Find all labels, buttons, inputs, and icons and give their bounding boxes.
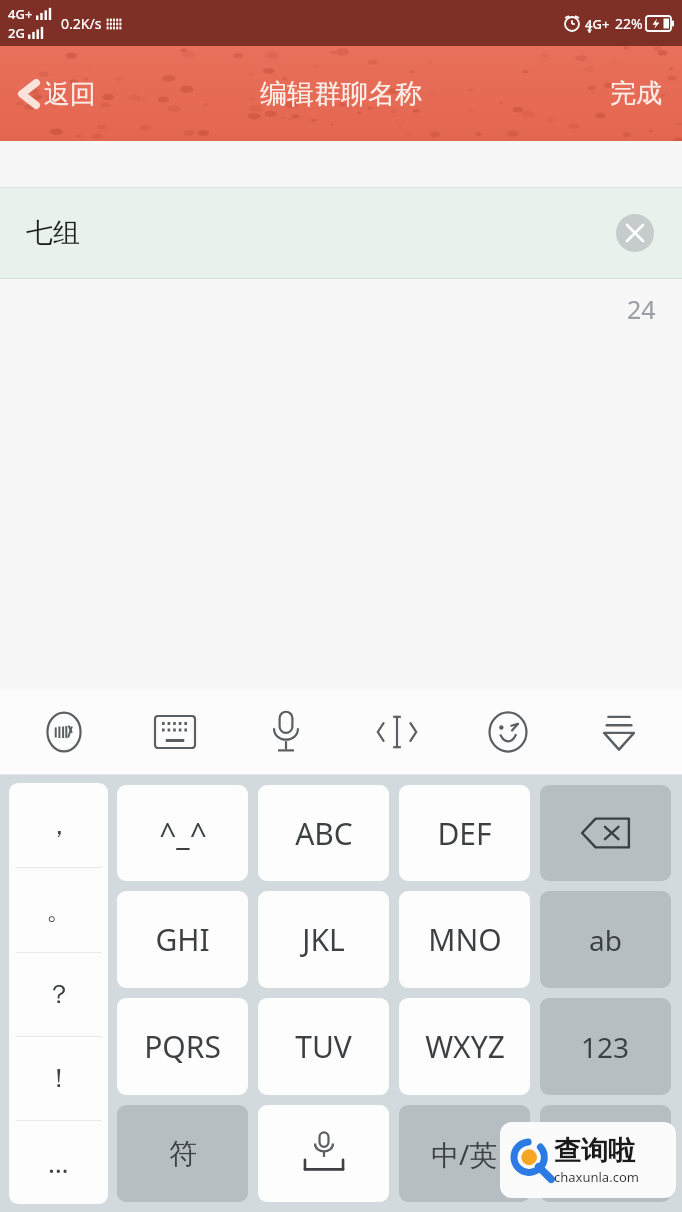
staticText: 编辑群聊名称 <box>260 77 422 111</box>
staticText: TUV <box>295 1026 352 1067</box>
staticText: 4G+ <box>8 5 33 23</box>
button[interactable]: Space <box>258 1105 389 1202</box>
staticText: 22% <box>615 14 643 33</box>
button[interactable]: 完成 <box>602 69 670 118</box>
button[interactable]: TUV <box>258 998 389 1095</box>
staticText: 0.2K/s <box>61 14 102 33</box>
button[interactable]: 返回 <box>10 69 102 119</box>
staticText: DEF <box>437 813 492 854</box>
staticText: ab <box>589 921 622 959</box>
staticText: ？ <box>46 978 72 1011</box>
button[interactable]: ^_^ <box>117 785 248 881</box>
staticText: ， <box>46 809 72 842</box>
staticText: chaxunla.com <box>554 1168 639 1186</box>
button[interactable]: Move cursor <box>341 689 452 775</box>
button[interactable]: WXYZ <box>399 998 530 1095</box>
button[interactable]: ， <box>9 783 108 867</box>
button[interactable]: JKL <box>258 891 389 988</box>
staticText: 中/英 <box>431 1135 498 1173</box>
staticText: GHI <box>155 919 210 960</box>
button[interactable]: 中/英 <box>399 1105 530 1202</box>
staticText: PQRS <box>144 1026 221 1067</box>
staticText: 4G+ <box>585 15 610 33</box>
button[interactable]: Clear text <box>616 214 654 252</box>
staticText: 。 <box>46 894 72 927</box>
staticText: 七组 <box>26 216 80 250</box>
staticText: 完成 <box>610 77 662 110</box>
button[interactable]: 123 <box>540 998 671 1095</box>
staticText: 24 <box>627 292 656 326</box>
staticText: MNO <box>428 919 502 960</box>
staticText: 2G <box>8 24 25 42</box>
button[interactable]: ABC <box>258 785 389 881</box>
button[interactable]: 七组 <box>0 187 682 279</box>
staticText: ABC <box>295 813 353 854</box>
button[interactable]: ！ <box>9 1037 108 1120</box>
staticText: ！ <box>46 1062 72 1095</box>
button[interactable]: 符 <box>117 1105 248 1202</box>
button[interactable]: Backspace <box>540 785 671 881</box>
staticText: ^_^ <box>159 813 207 854</box>
button[interactable]: ？ <box>9 953 108 1036</box>
staticText: 符 <box>169 1136 197 1171</box>
staticText: 123 <box>581 1028 630 1066</box>
button[interactable]: PQRS <box>117 998 248 1095</box>
button[interactable]: Voice input <box>230 689 341 775</box>
button[interactable]: … <box>9 1121 108 1204</box>
button[interactable]: 。 <box>9 868 108 952</box>
staticText: WXYZ <box>425 1026 505 1067</box>
button[interactable]: GHI <box>117 891 248 988</box>
staticText: 返回 <box>44 78 96 111</box>
button[interactable]: Enter <box>540 1105 671 1202</box>
button[interactable]: MNO <box>399 891 530 988</box>
staticText: 查询啦 <box>554 1134 635 1168</box>
button[interactable]: Input method <box>8 689 119 775</box>
button[interactable]: Keyboard layout <box>119 689 230 775</box>
button[interactable]: ab <box>540 891 671 988</box>
staticText: JKL <box>302 919 345 960</box>
staticText: … <box>48 1145 69 1180</box>
button[interactable]: Hide keyboard <box>563 689 674 775</box>
button[interactable]: Emoji <box>452 689 563 775</box>
button[interactable]: DEF <box>399 785 530 881</box>
